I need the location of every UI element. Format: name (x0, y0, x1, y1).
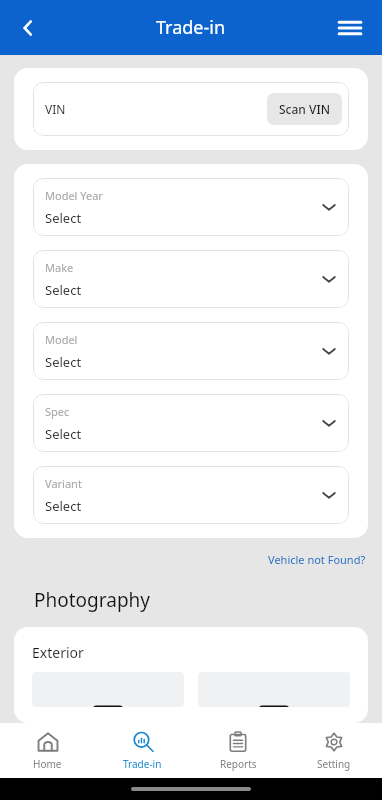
button[interactable]: Scan VIN (267, 93, 342, 125)
button[interactable]: Add photo (32, 672, 184, 707)
staticText: Model Year (45, 188, 103, 203)
staticText: Spec (45, 404, 70, 419)
button[interactable]: Vehicle not Found? (266, 550, 368, 569)
button[interactable]: Variant (33, 466, 349, 524)
staticText: Photography (34, 587, 151, 613)
staticText: Select (45, 281, 82, 299)
staticText: Trade-in (156, 15, 226, 40)
staticText: Reports (220, 757, 257, 771)
button[interactable]: Home (0, 723, 95, 778)
button[interactable]: Spec (33, 394, 349, 452)
staticText: Make (45, 260, 74, 275)
staticText: Select (45, 425, 82, 443)
button[interactable]: Menu (330, 8, 370, 48)
button[interactable]: Reports (190, 723, 286, 778)
button[interactable]: Setting (286, 723, 382, 778)
staticText: Exterior (32, 643, 84, 662)
staticText: Home (33, 757, 62, 771)
button[interactable]: Make (33, 250, 349, 308)
staticText: Trade-in (123, 757, 162, 771)
staticText: Vehicle not Found? (268, 552, 366, 567)
button[interactable]: Back (8, 8, 48, 48)
button[interactable]: Model Year (33, 178, 349, 236)
staticText: Scan VIN (279, 101, 330, 117)
staticText: Select (45, 497, 82, 515)
staticText: VIN (45, 101, 66, 117)
button[interactable]: Model (33, 322, 349, 380)
button[interactable]: Add photo (198, 672, 350, 707)
button[interactable]: Trade-in (95, 723, 190, 778)
staticText: Select (45, 209, 82, 227)
staticText: Select (45, 353, 82, 371)
staticText: Model (45, 332, 78, 347)
staticText: Variant (45, 476, 82, 491)
staticText: Setting (317, 757, 351, 771)
